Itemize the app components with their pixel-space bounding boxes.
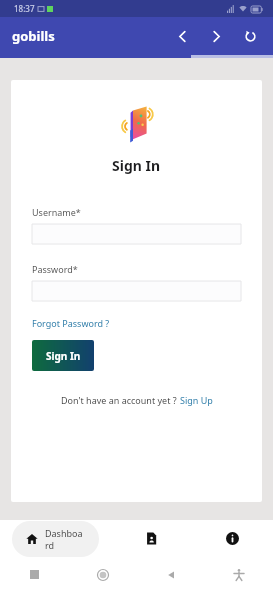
- button[interactable]: Reload: [235, 21, 265, 51]
- staticText: Username*: [32, 206, 81, 218]
- staticText: Sign In: [112, 156, 161, 175]
- button[interactable]: Accessibility: [205, 557, 273, 592]
- button[interactable]: [32, 281, 241, 301]
- button[interactable]: Forgot Password ?: [32, 317, 110, 329]
- button[interactable]: Back: [137, 557, 205, 592]
- staticText: 18:37: [14, 3, 35, 14]
- staticText: Sign In: [46, 349, 81, 363]
- staticText: Forgot Password ?: [32, 317, 110, 329]
- button[interactable]: Bills: [111, 520, 192, 557]
- staticText: Dashboard: [45, 527, 85, 551]
- staticText: Don't have an account yet ?: [61, 394, 177, 406]
- button[interactable]: Info: [192, 520, 273, 557]
- button[interactable]: Dashboard: [12, 521, 99, 557]
- button[interactable]: Home: [69, 557, 137, 592]
- button[interactable]: Sign In: [32, 340, 94, 371]
- button[interactable]: Forward: [201, 21, 231, 51]
- button[interactable]: Sign Up: [180, 394, 213, 406]
- button[interactable]: [32, 224, 241, 244]
- staticText: gobills: [12, 27, 55, 45]
- button[interactable]: Recents: [0, 557, 69, 592]
- staticText: Password*: [32, 263, 78, 275]
- staticText: Sign Up: [180, 394, 213, 406]
- button[interactable]: Back: [167, 21, 197, 51]
